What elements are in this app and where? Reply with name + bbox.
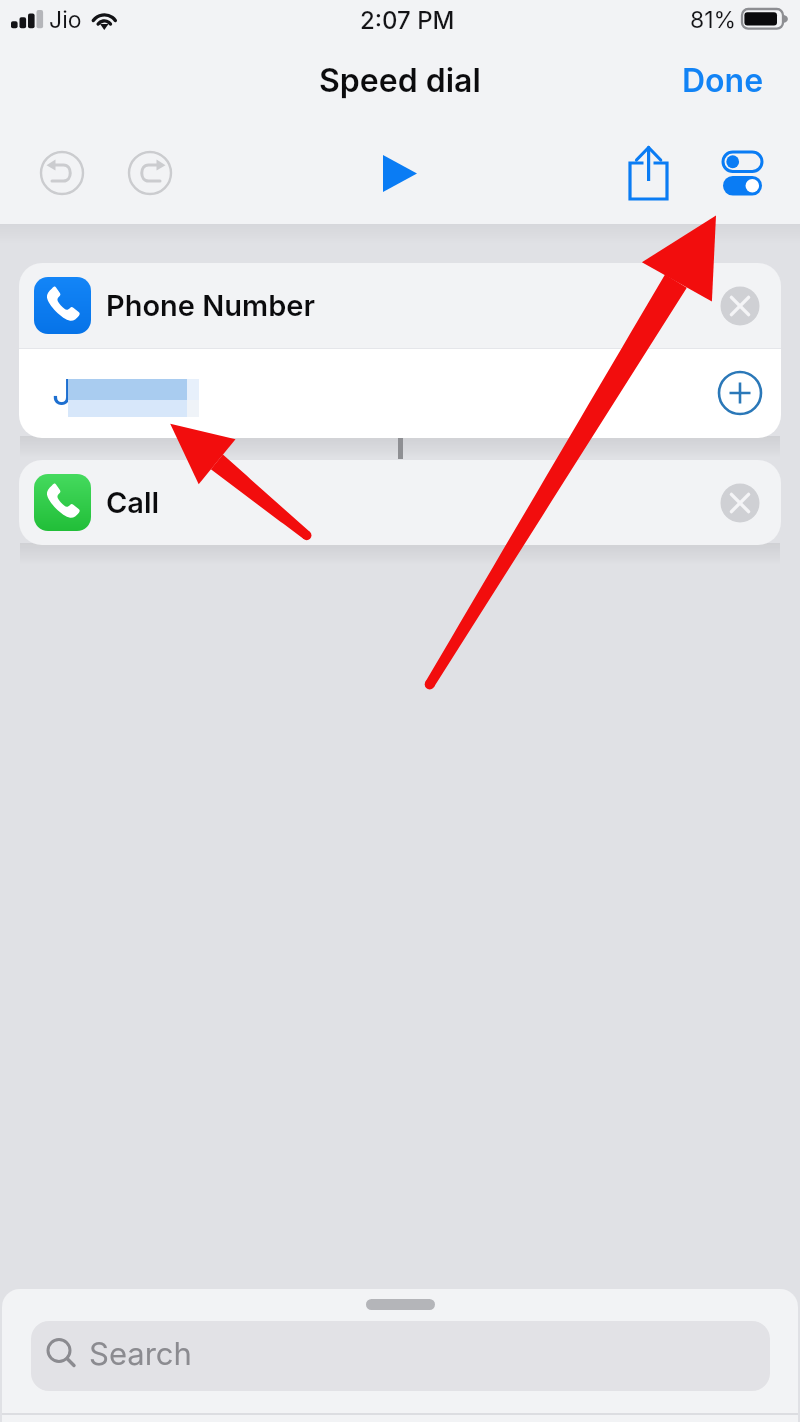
staticText: 81% (690, 6, 737, 34)
button[interactable]: Play (367, 141, 433, 207)
button[interactable]: Redo (118, 141, 182, 205)
staticText: Search (89, 1335, 192, 1373)
button[interactable]: Search (31, 1321, 770, 1391)
button[interactable]: Settings (710, 139, 776, 209)
button[interactable]: Add (714, 367, 766, 419)
button[interactable]: Share (617, 137, 681, 207)
staticText: 2:07 PM (360, 6, 455, 35)
staticText: Jio (49, 6, 82, 34)
button[interactable]: J (19, 348, 781, 438)
button[interactable]: Phone Number (19, 263, 781, 348)
button[interactable]: Done (660, 52, 785, 108)
staticText: J (52, 370, 73, 414)
button[interactable]: Call (19, 460, 781, 545)
button[interactable]: Remove (716, 479, 764, 527)
staticText: Speed dial (319, 61, 481, 100)
button[interactable]: Remove (716, 282, 764, 330)
button[interactable]: Speed dial (300, 55, 500, 105)
staticText: Done (682, 61, 764, 100)
staticText: Call (106, 485, 160, 520)
button[interactable]: Undo (30, 141, 94, 205)
staticText: Phone Number (106, 288, 315, 323)
